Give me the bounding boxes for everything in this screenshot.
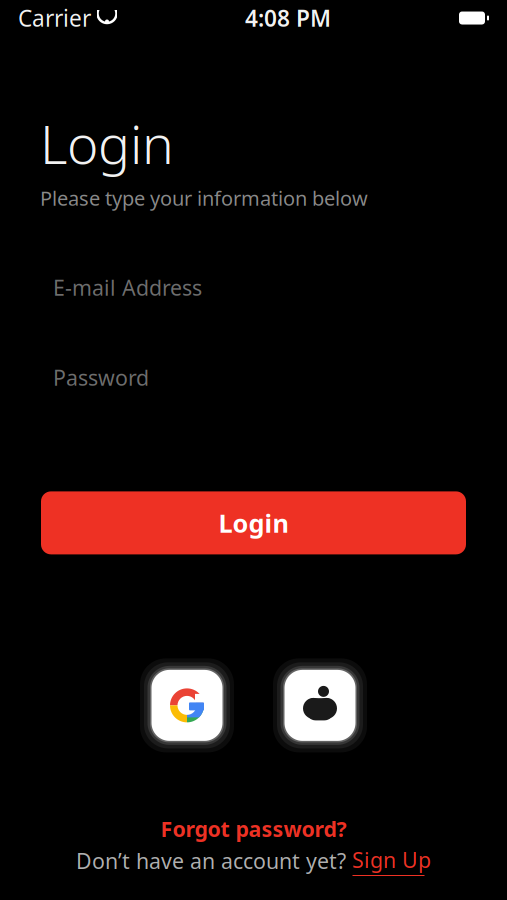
staticText: E-mail Address (53, 273, 202, 301)
staticText: Password (53, 363, 149, 391)
staticText: Sign Up (346, 846, 431, 874)
staticText: Forgot password? (160, 814, 346, 843)
button[interactable]: E-mail Address (40, 273, 467, 301)
staticText: Login (40, 108, 174, 179)
button[interactable]: Password (40, 363, 467, 391)
button[interactable]: Sign Up (346, 846, 431, 876)
staticText: 4:08 PM (245, 3, 331, 33)
staticText: Don’t have an account yet? (76, 847, 346, 875)
staticText: Please type your information below (40, 185, 368, 211)
button[interactable]: Sign in with Apple (273, 658, 367, 752)
button[interactable]: Forgot password? (123, 818, 383, 840)
staticText: Carrier (18, 3, 91, 33)
button[interactable]: Login (41, 491, 466, 554)
staticText: Login (218, 506, 288, 540)
button[interactable]: Sign in with Google (140, 658, 234, 752)
